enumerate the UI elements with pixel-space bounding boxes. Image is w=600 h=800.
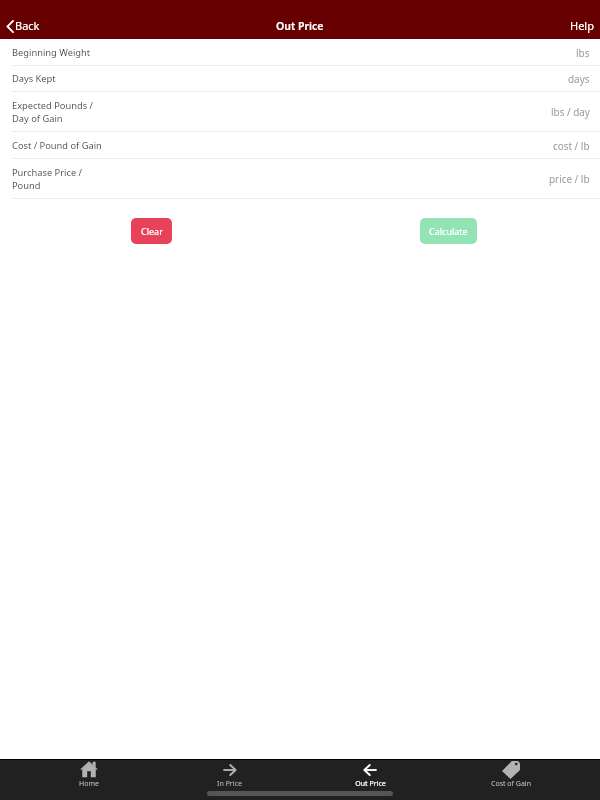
other: Out Price <box>363 763 378 777</box>
staticText: Beginning Weight <box>12 46 91 59</box>
other: Home <box>80 761 98 778</box>
staticText: Days Kept <box>12 72 56 85</box>
staticText: Cost of Gain <box>491 779 531 789</box>
staticText: cost / lb <box>553 139 590 152</box>
button[interactable]: Back <box>0 15 50 36</box>
staticText: Out Price <box>276 19 324 33</box>
staticText: Help <box>570 18 594 33</box>
staticText: Home <box>79 779 99 789</box>
staticText: Calculate <box>429 225 468 237</box>
button[interactable]: Clear <box>131 218 172 244</box>
button[interactable]: Days Kept <box>0 66 600 92</box>
staticText: lbs <box>576 46 590 59</box>
button[interactable]: In Price <box>159 760 300 789</box>
staticText: price / lb <box>549 172 590 185</box>
staticText: Back <box>15 18 40 33</box>
staticText: Day of Gain <box>12 112 63 125</box>
staticText: Pound <box>12 179 41 192</box>
button[interactable]: Out Price <box>300 760 441 789</box>
staticText: lbs / day <box>551 105 590 118</box>
staticText: In Price <box>217 779 242 789</box>
staticText: Purchase Price / <box>12 166 83 179</box>
button[interactable]: Beginning Weight <box>0 39 600 66</box>
staticText: Cost / Pound of Gain <box>12 139 102 152</box>
button[interactable]: Home <box>19 760 159 789</box>
button[interactable]: Expected Pounds / <box>0 92 600 132</box>
button[interactable]: Cost / Pound of Gain <box>0 132 600 159</box>
button[interactable]: Cost of Gain <box>441 760 581 789</box>
other: Cost of Gain <box>502 761 520 779</box>
other: In Price <box>222 763 237 777</box>
button[interactable]: Help <box>558 14 600 37</box>
staticText: Clear <box>141 225 163 237</box>
staticText: days <box>568 72 590 85</box>
button[interactable]: Purchase Price / <box>0 159 600 199</box>
staticText: Out Price <box>355 779 386 789</box>
button[interactable]: Calculate <box>420 218 477 244</box>
staticText: Expected Pounds / <box>12 99 94 112</box>
